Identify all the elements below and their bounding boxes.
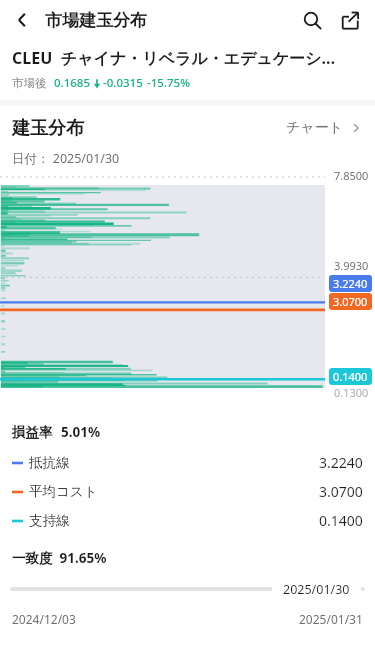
staticText: CLEU チャイナ・リベラル・エデュケーシ… xyxy=(12,47,336,69)
staticText: 3.0700 xyxy=(319,482,363,501)
staticText: 建玉分布 xyxy=(12,117,84,140)
staticText: 支持線 xyxy=(29,512,70,529)
staticText: 2024/12/03 xyxy=(12,611,76,627)
button[interactable]: Date slider xyxy=(12,575,363,603)
button[interactable]: 支持線 xyxy=(12,511,363,530)
staticText: 3.2240 xyxy=(319,453,363,472)
staticText: チャート xyxy=(286,119,343,137)
staticText: 5.01% xyxy=(61,423,101,441)
staticText: 市場建玉分布 xyxy=(45,10,147,31)
staticText: -15.75% xyxy=(147,75,190,91)
staticText: 平均コスト xyxy=(29,483,98,500)
button[interactable]: 抵抗線 xyxy=(12,453,363,472)
staticText: 0.1400 xyxy=(333,369,368,384)
staticText: 0.1300 xyxy=(334,385,369,400)
button[interactable]: Search xyxy=(293,1,331,39)
staticText: 3.0700 xyxy=(333,294,368,309)
staticText: -0.0315 xyxy=(103,75,143,91)
staticText: 0.1685 xyxy=(54,75,91,91)
staticText: 3.9930 xyxy=(334,258,369,273)
staticText: 0.1400 xyxy=(319,511,363,530)
button[interactable]: Share xyxy=(331,1,369,39)
staticText: 損益率 xyxy=(12,424,53,441)
staticText: 2025/01/31 xyxy=(299,611,363,627)
staticText: 2025/01/30 xyxy=(283,581,350,598)
button[interactable]: 平均コスト xyxy=(12,482,363,501)
button[interactable]: チャート xyxy=(284,115,363,141)
staticText: 抵抗線 xyxy=(29,454,70,471)
staticText: 7.8500 xyxy=(334,168,369,183)
button[interactable]: Back xyxy=(3,1,41,39)
staticText: 市場後 xyxy=(12,76,47,90)
staticText: 3.2240 xyxy=(333,276,368,291)
staticText: 一致度 91.65% xyxy=(12,549,107,567)
staticText: 日付： 2025/01/30 xyxy=(12,150,120,167)
